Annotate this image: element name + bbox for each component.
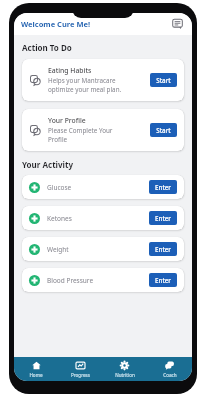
staticText: Start (156, 76, 171, 84)
staticText: Enter (155, 183, 171, 191)
staticText: Enter (155, 214, 171, 222)
button[interactable]: Enter (149, 180, 177, 194)
staticText: Helps your Mantracare optimize your meal… (48, 76, 122, 94)
button[interactable]: Ketones (22, 206, 184, 230)
staticText: Your Activity (22, 159, 73, 170)
staticText: Ketones (47, 214, 149, 223)
staticText: Enter (155, 245, 171, 253)
button[interactable]: Home (14, 357, 58, 381)
staticText: Action To Do (22, 42, 72, 53)
staticText: Blood Pressure (47, 276, 149, 285)
staticText: Home (29, 372, 43, 378)
button[interactable]: Progress (58, 357, 102, 381)
button[interactable]: Glucose (22, 175, 184, 199)
button[interactable]: Weight (22, 237, 184, 261)
staticText: Glucose (47, 183, 149, 192)
button[interactable]: Nutrition (102, 357, 147, 381)
button[interactable]: Start (150, 73, 177, 87)
staticText: Progress (71, 372, 90, 378)
staticText: Weight (47, 245, 149, 254)
staticText: Coach (163, 372, 177, 378)
button[interactable]: Blood Pressure (22, 268, 184, 292)
staticText: Nutrition (115, 372, 135, 378)
staticText: Eating Habits (48, 66, 92, 75)
staticText: Start (156, 126, 171, 134)
button[interactable]: Enter (149, 211, 177, 225)
button[interactable]: Start (150, 123, 177, 137)
button[interactable]: Enter (149, 242, 177, 256)
staticText: Your Profile (48, 116, 86, 125)
staticText: Enter (155, 276, 171, 284)
button[interactable]: Your Profile (22, 109, 184, 151)
button[interactable]: Coach (147, 357, 192, 381)
button[interactable]: Enter (149, 273, 177, 287)
button[interactable]: Eating Habits (22, 59, 184, 101)
staticText: Welcome Cure Me! (21, 19, 91, 29)
staticText: Please Complete Your Profile (48, 126, 113, 144)
button[interactable]: Messages (171, 17, 185, 31)
